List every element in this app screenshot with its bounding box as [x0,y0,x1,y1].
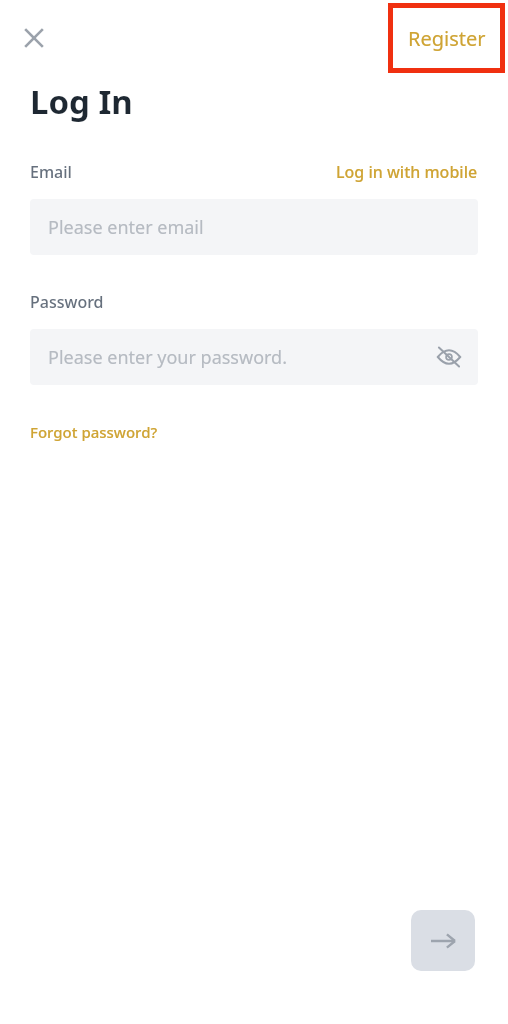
button[interactable]: Please enter your password. [30,329,478,385]
staticText: Please enter your password. [48,345,288,370]
staticText: Log In [30,79,133,124]
button[interactable]: Show password [427,335,471,379]
staticText: Forgot password? [30,422,158,442]
staticText: Please enter email [48,215,204,240]
staticText: Email [30,161,72,183]
staticText: Password [30,291,104,313]
button[interactable]: Submit [411,910,475,971]
staticText: Log in with mobile [336,161,478,183]
button[interactable]: Log in with mobile [336,161,478,183]
button[interactable]: Please enter email [30,199,478,255]
staticText: Register [408,25,486,52]
button[interactable]: Register [388,3,505,73]
button[interactable]: Forgot password? [30,422,158,442]
button[interactable]: Close [10,14,58,62]
